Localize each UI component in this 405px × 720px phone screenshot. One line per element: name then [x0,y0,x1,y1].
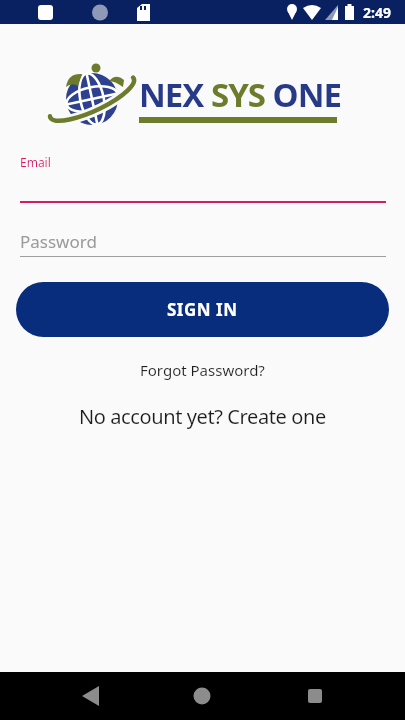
button[interactable] [270,672,405,720]
button[interactable]: No account yet? Create one [79,403,326,430]
button[interactable] [135,672,270,720]
staticText: Password [20,230,97,253]
staticText: Email [20,154,51,170]
staticText: Forgot Password? [140,360,265,380]
staticText: SIGN IN [167,298,238,321]
button[interactable]: Email [20,154,51,170]
staticText: NEX SYS ONE [139,72,342,117]
button[interactable]: SIGN IN [16,282,389,337]
button[interactable] [0,672,135,720]
button[interactable]: Forgot Password? [140,360,265,380]
button[interactable]: Password [20,230,97,253]
staticText: No account yet? Create one [79,403,326,430]
staticText: 2:49 [363,3,391,22]
